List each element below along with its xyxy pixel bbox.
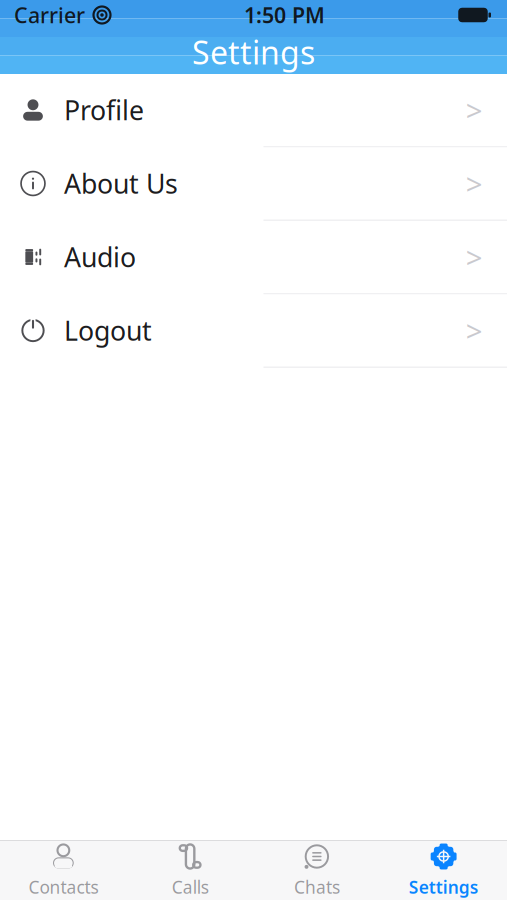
staticText: Settings	[409, 875, 479, 898]
staticText: >	[466, 237, 483, 276]
staticText: >	[466, 311, 483, 350]
staticText: Logout	[64, 313, 152, 348]
staticText: Chats	[294, 875, 340, 898]
staticText: Profile	[64, 92, 144, 128]
button[interactable]: Profile	[0, 74, 507, 147]
button[interactable]: Logout	[0, 294, 507, 368]
staticText: Settings	[192, 31, 315, 73]
staticText: Audio	[64, 239, 136, 275]
button[interactable]: Contacts	[0, 834, 127, 900]
staticText: >	[466, 90, 483, 129]
staticText: >	[466, 164, 483, 203]
staticText: Contacts	[28, 875, 98, 898]
staticText: Carrier	[14, 1, 85, 29]
button[interactable]: Audio	[0, 221, 507, 294]
staticText: Calls	[172, 875, 209, 898]
staticText: About Us	[64, 166, 178, 201]
button[interactable]: Settings	[380, 834, 507, 900]
button[interactable]: Chats	[253, 834, 380, 900]
button[interactable]: About Us	[0, 147, 507, 221]
staticText: 1:50 PM	[244, 1, 325, 29]
button[interactable]: Calls	[127, 834, 254, 900]
